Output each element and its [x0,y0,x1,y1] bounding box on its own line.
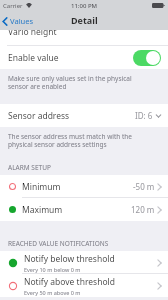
button[interactable]: Notify above threshold [0,274,168,297]
staticText: REACHED VALUE NOTIFICATIONS [8,239,109,248]
staticText: Maximum [22,204,63,216]
button[interactable]: ID: 6 [135,110,162,121]
button[interactable]: Maximum [0,198,168,221]
staticText: Notify above threshold [24,276,115,288]
staticText: 11:00 PM [71,2,98,10]
staticText: Every 50 m above 0 m [24,289,81,296]
staticText: Vario height [8,30,57,38]
staticText: Make sure only values set in the physica… [8,74,132,91]
staticText: -50 m [133,181,155,192]
staticText: Minimum [22,181,61,193]
button[interactable]: Notify below threshold [0,251,168,274]
staticText: Carrier [3,2,23,10]
staticText: ID: 6 [135,110,153,121]
staticText: Values [10,16,34,26]
staticText: Detail [71,14,98,26]
staticText: Sensor address [8,110,70,122]
staticText: Enable value [8,52,59,64]
staticText: Every 10 m below 0 m [24,266,81,273]
staticText: The sensor address must match with the p… [8,132,132,149]
staticText: 120 m [131,204,155,215]
button[interactable]: Enable value [133,50,161,66]
button[interactable]: Back to Values [0,16,50,26]
button[interactable]: Minimum [0,175,168,198]
staticText: Notify below threshold [24,253,115,265]
staticText: ALARM SETUP [8,163,51,172]
